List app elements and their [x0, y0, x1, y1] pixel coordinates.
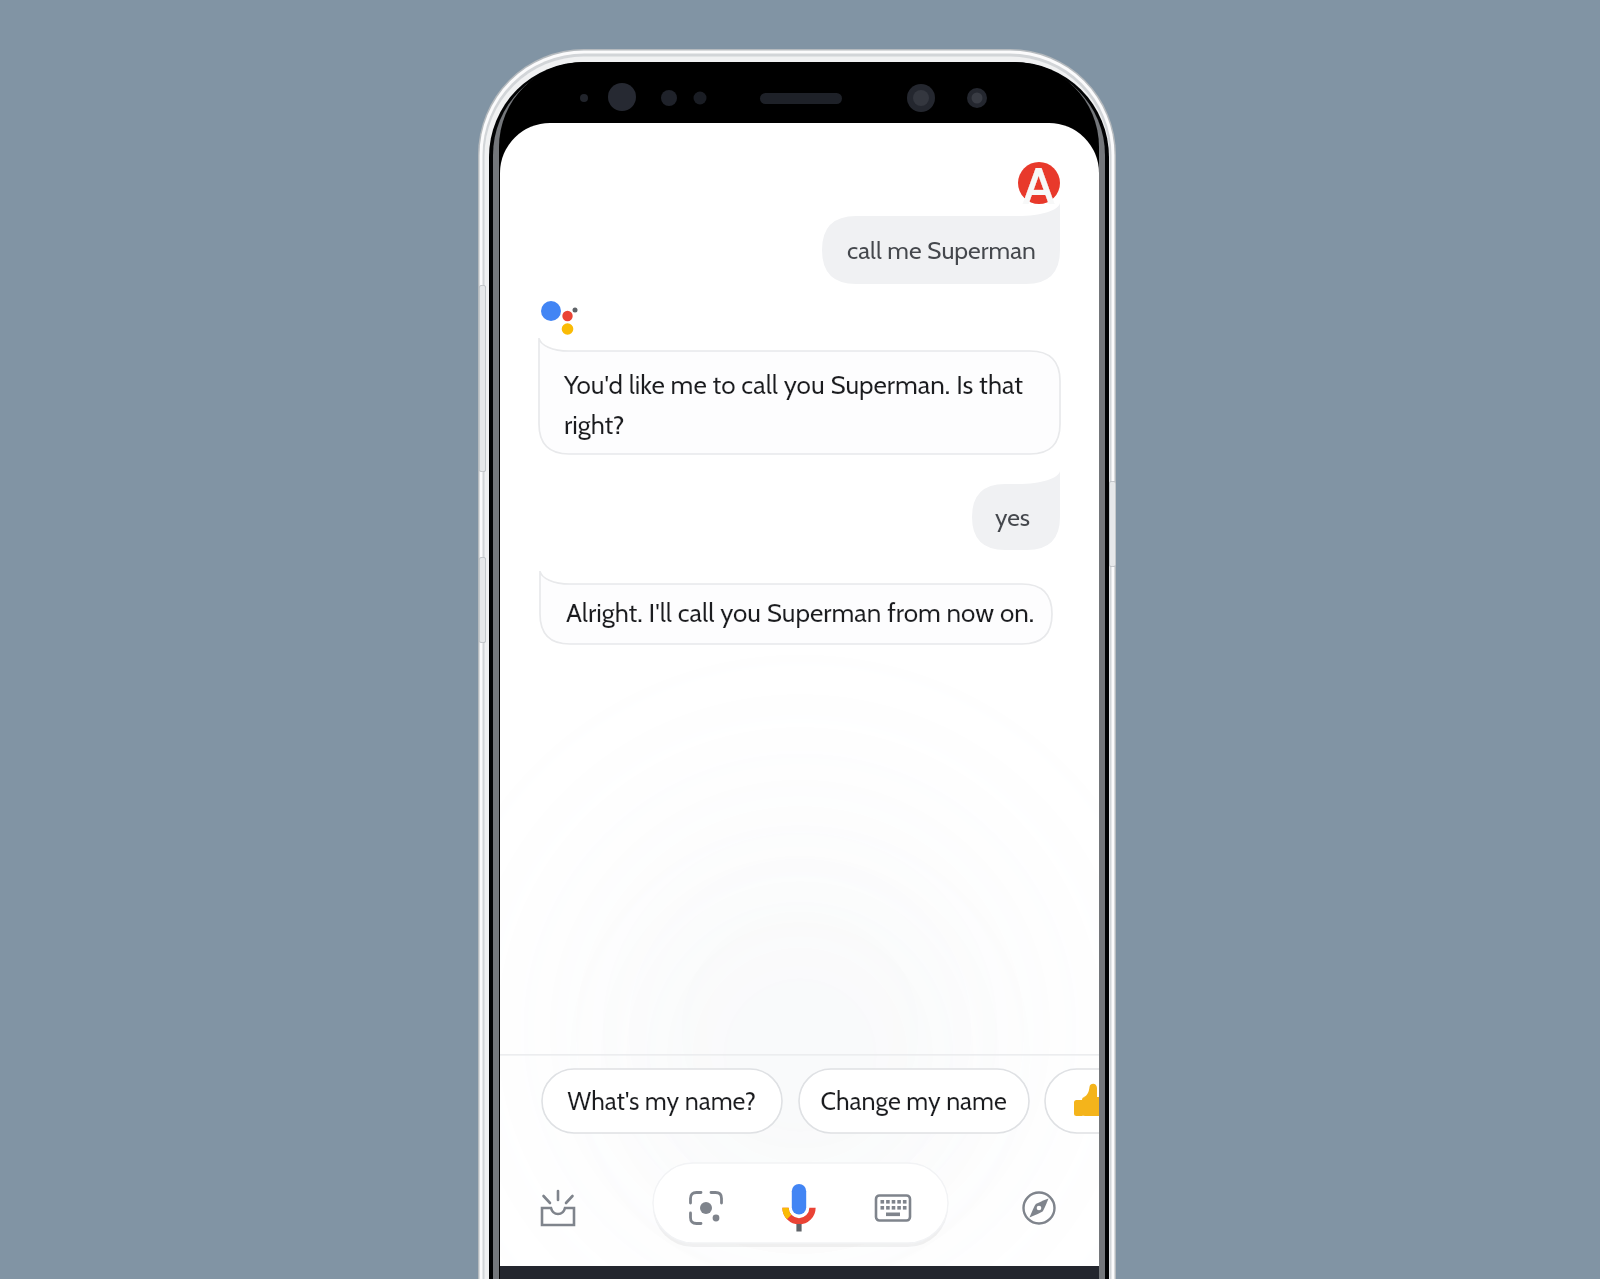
button[interactable]: Voice search: [771, 1179, 828, 1236]
button[interactable]: Thumbs up: [1045, 1069, 1099, 1133]
button[interactable]: Explore: [1011, 1180, 1068, 1237]
button[interactable]: [799, 1069, 1029, 1133]
button[interactable]: Keyboard: [865, 1180, 922, 1237]
button[interactable]: [542, 1069, 782, 1133]
button[interactable]: Account: [1018, 162, 1060, 204]
button[interactable]: Google Lens: [678, 1180, 735, 1237]
button[interactable]: Snapshot: [530, 1181, 587, 1238]
